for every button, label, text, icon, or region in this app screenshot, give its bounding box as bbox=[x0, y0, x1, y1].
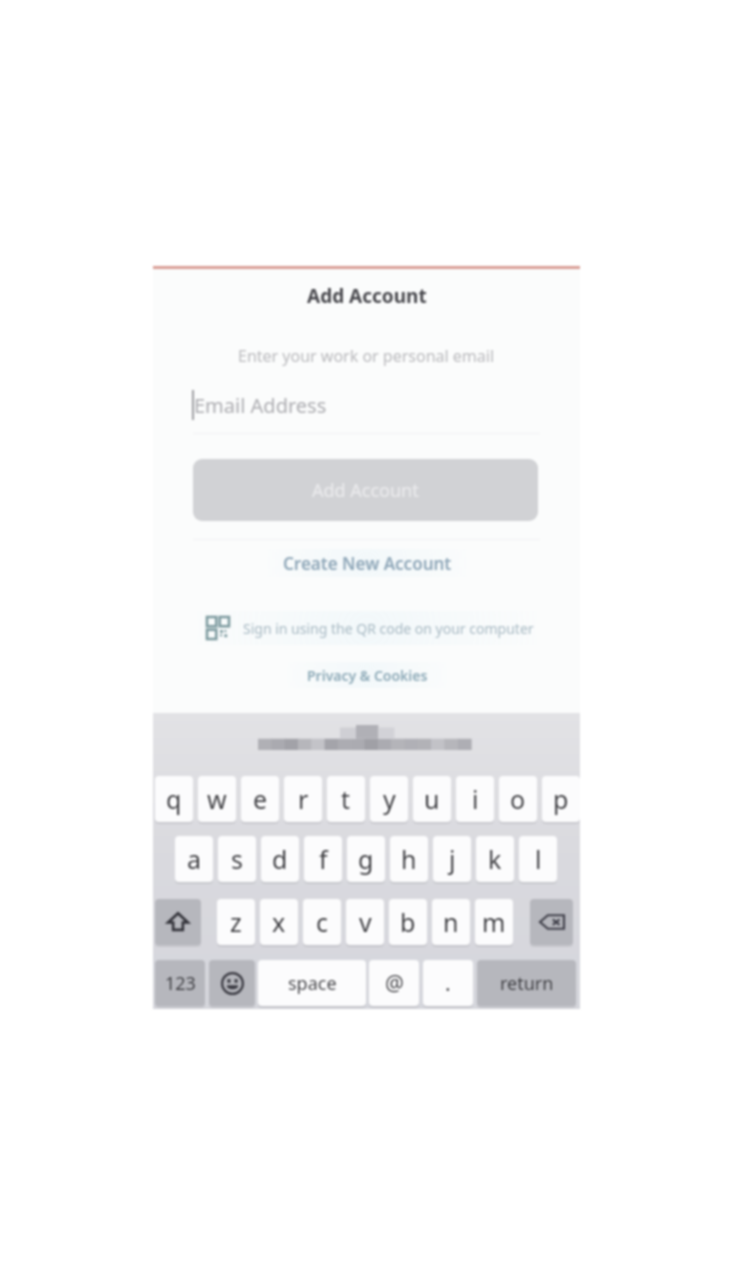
staticText: m bbox=[482, 905, 506, 939]
staticText: Email Address bbox=[194, 392, 327, 419]
staticText: Enter your work or personal email bbox=[238, 345, 495, 367]
button[interactable]: Shift bbox=[155, 899, 201, 945]
staticText: q bbox=[166, 782, 182, 816]
button[interactable]: return bbox=[477, 960, 576, 1006]
staticText: Add Account bbox=[307, 283, 427, 309]
button[interactable]: m bbox=[475, 899, 513, 945]
button[interactable]: z bbox=[217, 899, 255, 945]
staticText: w bbox=[207, 782, 227, 816]
other: QR code sign in bbox=[207, 617, 229, 639]
button[interactable]: k bbox=[476, 836, 514, 882]
button[interactable]: Add Account bbox=[193, 459, 538, 521]
button[interactable]: r bbox=[284, 776, 322, 822]
staticText: t bbox=[341, 782, 351, 816]
staticText: . bbox=[445, 969, 451, 998]
button[interactable]: e bbox=[241, 776, 279, 822]
button[interactable]: n bbox=[432, 899, 470, 945]
button[interactable]: q bbox=[155, 776, 193, 822]
button[interactable]: s bbox=[218, 836, 256, 882]
staticText: Sign in using the QR code on your comput… bbox=[243, 619, 534, 638]
staticText: return bbox=[500, 971, 554, 996]
staticText: y bbox=[383, 782, 396, 816]
button[interactable]: l bbox=[519, 836, 557, 882]
button[interactable]: a bbox=[175, 836, 213, 882]
button[interactable]: Create New Account bbox=[251, 543, 483, 583]
button[interactable]: g bbox=[347, 836, 385, 882]
button[interactable]: Privacy & Cookies bbox=[271, 656, 463, 694]
button[interactable]: x bbox=[260, 899, 298, 945]
button[interactable]: p bbox=[542, 776, 580, 822]
button[interactable]: o bbox=[499, 776, 537, 822]
staticText: s bbox=[231, 842, 243, 876]
button[interactable]: @ bbox=[369, 960, 419, 1006]
button[interactable]: i bbox=[456, 776, 494, 822]
button[interactable]: Backspace bbox=[530, 899, 573, 945]
staticText: o bbox=[510, 782, 526, 816]
staticText: x bbox=[272, 905, 286, 939]
button[interactable]: t bbox=[327, 776, 365, 822]
button[interactable]: QR code sign in bbox=[199, 613, 542, 643]
button[interactable]: Emoji bbox=[209, 960, 255, 1006]
staticText: Privacy & Cookies bbox=[307, 666, 428, 685]
staticText: v bbox=[359, 905, 372, 939]
staticText: a bbox=[187, 842, 202, 876]
staticText: p bbox=[553, 782, 569, 816]
button[interactable]: b bbox=[389, 899, 427, 945]
button[interactable]: f bbox=[304, 836, 342, 882]
button[interactable]: 123 bbox=[155, 960, 205, 1006]
button[interactable]: v bbox=[346, 899, 384, 945]
staticText: Add Account bbox=[312, 478, 419, 503]
staticText: u bbox=[424, 782, 440, 816]
button[interactable]: w bbox=[198, 776, 236, 822]
button[interactable]: y bbox=[370, 776, 408, 822]
button[interactable]: . bbox=[423, 960, 473, 1006]
staticText: k bbox=[488, 842, 502, 876]
button[interactable]: c bbox=[303, 899, 341, 945]
staticText: h bbox=[401, 842, 417, 876]
staticText: r bbox=[298, 782, 309, 816]
staticText: space bbox=[288, 971, 337, 996]
button[interactable]: j bbox=[433, 836, 471, 882]
button[interactable]: h bbox=[390, 836, 428, 882]
button[interactable]: u bbox=[413, 776, 451, 822]
staticText: @ bbox=[385, 969, 404, 998]
staticText: j bbox=[449, 842, 456, 876]
staticText: e bbox=[253, 782, 268, 816]
staticText: Create New Account bbox=[283, 552, 452, 575]
staticText: g bbox=[358, 842, 374, 876]
button[interactable]: space bbox=[258, 960, 366, 1006]
staticText: b bbox=[400, 905, 416, 939]
staticText: d bbox=[272, 842, 288, 876]
button[interactable]: d bbox=[261, 836, 299, 882]
staticText: n bbox=[443, 905, 459, 939]
staticText: i bbox=[472, 782, 479, 816]
staticText: 123 bbox=[165, 971, 196, 996]
staticText: c bbox=[316, 905, 329, 939]
staticText: l bbox=[535, 842, 542, 876]
staticText: z bbox=[230, 905, 242, 939]
staticText: f bbox=[319, 842, 328, 876]
